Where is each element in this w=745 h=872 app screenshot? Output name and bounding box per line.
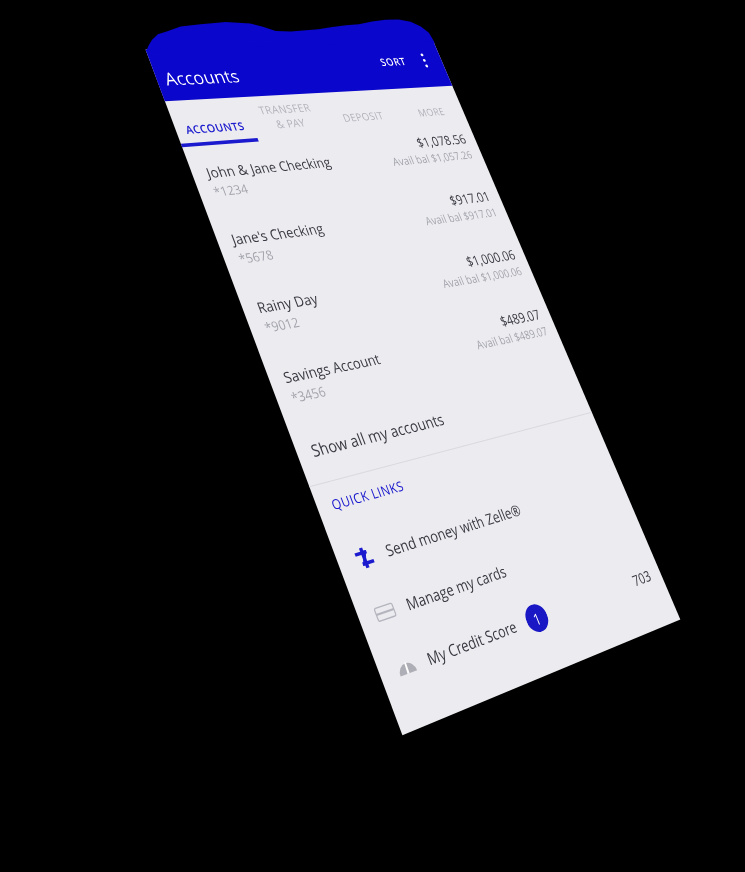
staticText: Avail bal $489.07 bbox=[473, 323, 550, 353]
staticText: Savings Account bbox=[280, 349, 383, 387]
staticText: $1,000.06 bbox=[463, 245, 518, 270]
button[interactable]: TRANSFER & PAY bbox=[241, 93, 333, 141]
staticText: *5678 bbox=[236, 246, 276, 267]
staticText: Send money with Zelle® bbox=[382, 499, 524, 561]
button[interactable]: DEPOSIT bbox=[316, 89, 406, 136]
staticText: $1,078.56 bbox=[413, 130, 469, 151]
staticText: Manage my cards bbox=[402, 560, 510, 615]
staticText: Avail bal $1,057.26 bbox=[390, 147, 475, 169]
staticText: TRANSFER & PAY bbox=[256, 100, 319, 133]
button[interactable]: SORT bbox=[368, 49, 418, 74]
staticText: Accounts bbox=[160, 64, 243, 91]
button[interactable]: Savings Account bbox=[259, 299, 569, 423]
staticText: John & Jane Checking bbox=[203, 153, 334, 182]
button[interactable]: MORE bbox=[389, 86, 469, 130]
staticText: *1234 bbox=[211, 180, 251, 200]
button[interactable]: Jane's Checking bbox=[207, 182, 518, 282]
staticText: Rainy Day bbox=[254, 288, 320, 317]
staticText: DEPOSIT bbox=[340, 109, 386, 125]
staticText: Avail bal $917.01 bbox=[422, 204, 499, 229]
staticText: $917.01 bbox=[446, 187, 493, 209]
button[interactable]: My Credit Score bbox=[370, 547, 670, 705]
staticText: QUICK LINKS bbox=[328, 476, 407, 514]
staticText: SORT bbox=[377, 54, 409, 69]
staticText: $489.07 bbox=[496, 304, 543, 330]
button[interactable]: Rainy Day bbox=[233, 240, 543, 352]
button[interactable]: Manage my cards bbox=[349, 501, 649, 649]
staticText: 1 bbox=[530, 607, 544, 630]
staticText: MORE bbox=[415, 105, 447, 120]
staticText: Avail bal $1,000.06 bbox=[439, 263, 524, 291]
staticText: *3456 bbox=[288, 382, 329, 407]
staticText: ACCOUNTS bbox=[183, 118, 247, 137]
button[interactable]: More options bbox=[410, 49, 438, 72]
staticText: *9012 bbox=[262, 313, 302, 336]
button[interactable]: Show all my accounts bbox=[285, 359, 592, 486]
staticText: Show all my accounts bbox=[307, 408, 447, 462]
staticText: 703 bbox=[629, 565, 654, 590]
button[interactable]: Send money with Zelle® bbox=[328, 455, 630, 593]
button[interactable]: ACCOUNTS bbox=[165, 97, 259, 147]
button[interactable]: John & Jane Checking bbox=[182, 125, 493, 214]
staticText: My Credit Score bbox=[423, 615, 520, 670]
staticText: Jane's Checking bbox=[228, 219, 327, 249]
